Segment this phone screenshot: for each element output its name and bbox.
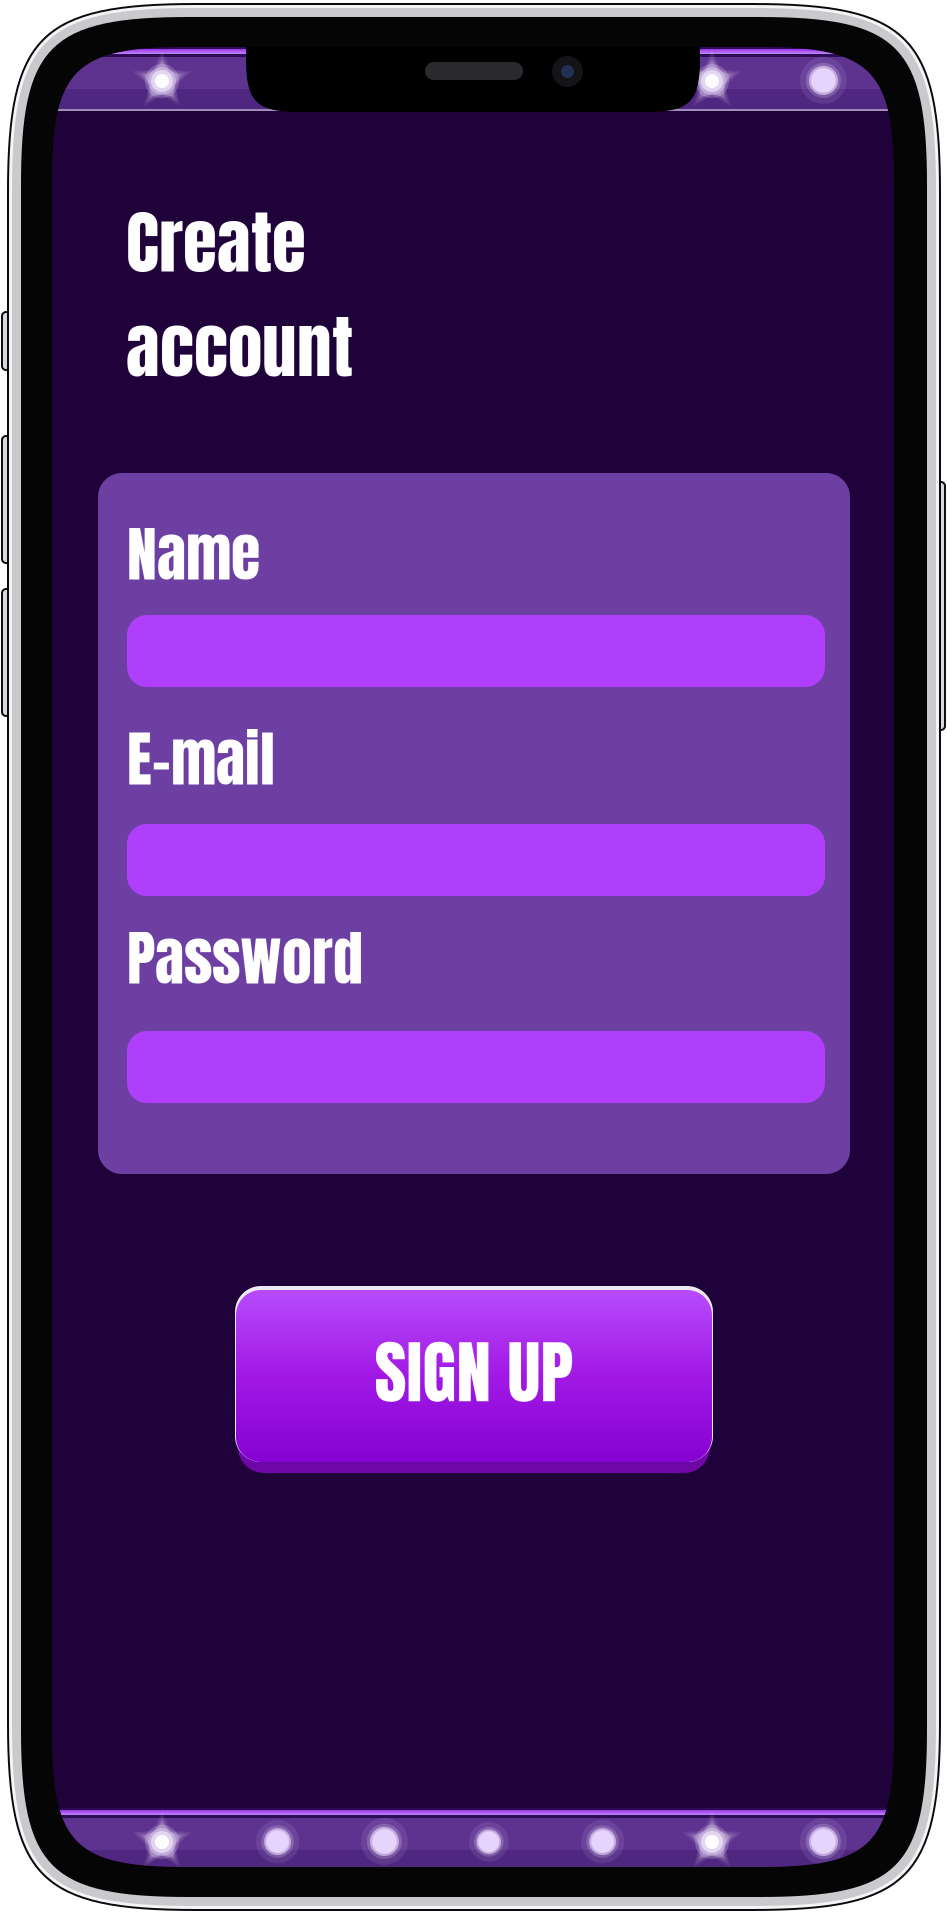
- button[interactable]: E-mail text field: [127, 824, 825, 896]
- staticText: SIGN UP: [374, 1320, 573, 1424]
- staticText: Password: [127, 913, 363, 1003]
- button[interactable]: SIGN UP: [235, 1286, 713, 1473]
- staticText: Name: [127, 509, 260, 599]
- staticText: Create account: [126, 190, 353, 399]
- button[interactable]: Name text field: [127, 615, 825, 687]
- button[interactable]: Password text field: [127, 1031, 825, 1103]
- staticText: E-mail: [127, 714, 275, 804]
